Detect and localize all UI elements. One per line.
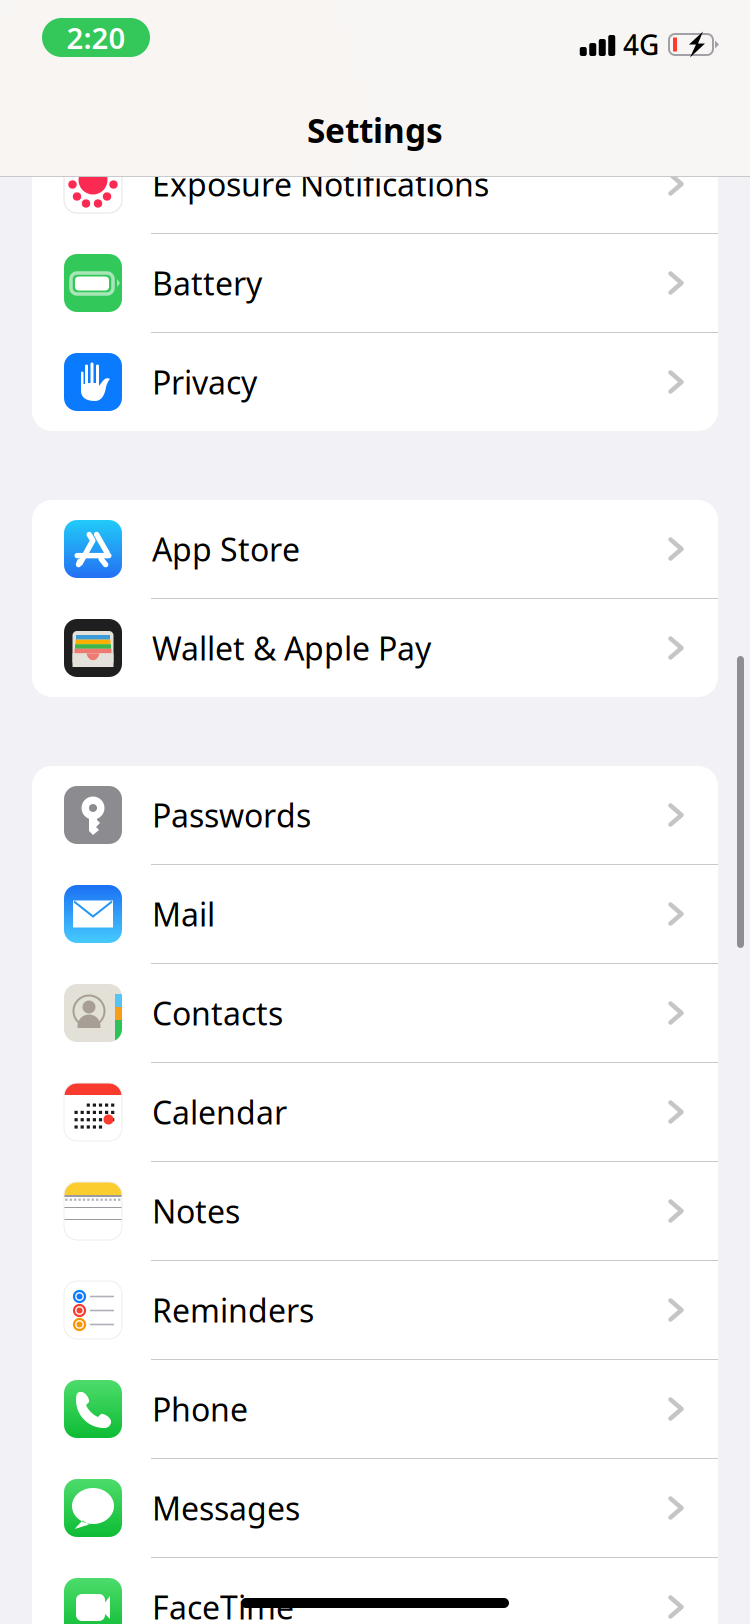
- staticText: Battery: [152, 262, 262, 304]
- staticText: Phone: [152, 1388, 248, 1430]
- staticText: App Store: [152, 528, 300, 570]
- staticText: Exposure Notifications: [152, 163, 489, 205]
- button[interactable]: Phone: [32, 1360, 718, 1458]
- staticText: Mail: [152, 893, 215, 935]
- button[interactable]: Notes: [32, 1162, 718, 1260]
- button[interactable]: Mail: [32, 865, 718, 963]
- button[interactable]: Battery: [32, 234, 718, 332]
- button[interactable]: Passwords: [32, 766, 718, 864]
- button[interactable]: Messages: [32, 1459, 718, 1557]
- staticText: 4G: [623, 26, 659, 63]
- staticText: Notes: [152, 1190, 240, 1232]
- staticText: Settings: [307, 108, 443, 152]
- button[interactable]: Privacy: [32, 333, 718, 431]
- button[interactable]: Reminders: [32, 1261, 718, 1359]
- staticText: Reminders: [152, 1289, 314, 1331]
- button[interactable]: App Store: [32, 500, 718, 598]
- button[interactable]: Exposure Notifications: [32, 135, 718, 233]
- staticText: Contacts: [152, 992, 283, 1034]
- staticText: Messages: [152, 1487, 300, 1529]
- staticText: Wallet & Apple Pay: [152, 627, 431, 669]
- button[interactable]: Calendar: [32, 1063, 718, 1161]
- staticText: Privacy: [152, 361, 257, 403]
- button[interactable]: Contacts: [32, 964, 718, 1062]
- staticText: Passwords: [152, 794, 311, 836]
- staticText: 2:20: [66, 18, 125, 57]
- button[interactable]: FaceTime: [32, 1558, 718, 1624]
- button[interactable]: Wallet & Apple Pay: [32, 599, 718, 697]
- staticText: FaceTime: [152, 1586, 294, 1624]
- staticText: Calendar: [152, 1091, 287, 1133]
